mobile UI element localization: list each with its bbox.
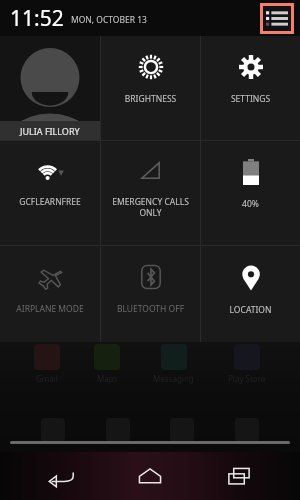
button[interactable]: 40% bbox=[201, 141, 300, 245]
staticText: LOCATION bbox=[203, 304, 298, 316]
button[interactable]: Back bbox=[33, 452, 89, 500]
staticText: BLUETOOTH OFF bbox=[103, 303, 198, 315]
staticText: Gmail bbox=[36, 373, 58, 384]
button[interactable]: BRIGHTNESS bbox=[101, 36, 200, 140]
button[interactable]: SETTINGS bbox=[201, 36, 300, 140]
staticText: Messaging bbox=[153, 373, 194, 384]
staticText: Play Store bbox=[228, 373, 266, 384]
staticText: AIRPLANE MODE bbox=[2, 303, 98, 315]
button[interactable]: Quick settings list bbox=[263, 6, 291, 31]
staticText: JULIA FILLORY bbox=[20, 125, 80, 137]
staticText: 11:52 bbox=[10, 4, 64, 33]
button[interactable]: JULIA FILLORY bbox=[0, 36, 100, 140]
staticText: GCFLEARNFREE bbox=[2, 196, 98, 208]
button[interactable]: Home bbox=[122, 452, 178, 500]
staticText: BRIGHTNESS bbox=[103, 93, 198, 105]
button[interactable]: GCFLEARNFREE bbox=[0, 141, 100, 245]
staticText: EMERGENCY CALLS ONLY bbox=[103, 196, 198, 218]
staticText: MON, OCTOBER 13 bbox=[71, 14, 147, 26]
button[interactable]: BLUETOOTH OFF bbox=[101, 246, 200, 342]
button[interactable]: AIRPLANE MODE bbox=[0, 246, 100, 342]
staticText: Maps bbox=[97, 373, 118, 384]
button[interactable]: LOCATION bbox=[201, 246, 300, 342]
button[interactable]: EMERGENCY CALLS ONLY bbox=[101, 141, 200, 245]
staticText: SETTINGS bbox=[203, 93, 298, 105]
button[interactable]: Recent apps bbox=[211, 452, 267, 500]
staticText: 40% bbox=[203, 198, 298, 210]
